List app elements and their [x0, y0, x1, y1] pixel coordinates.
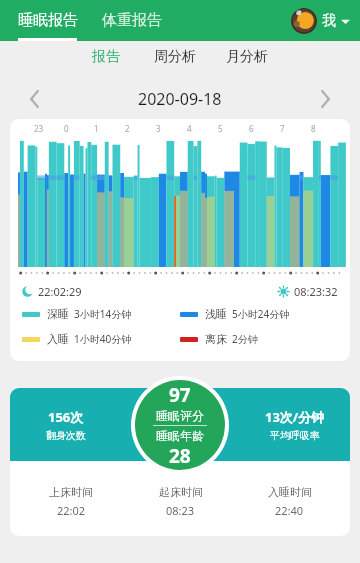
- staticText: 离床: [205, 332, 227, 346]
- staticText: 7: [280, 123, 285, 134]
- button[interactable]: 月分析: [222, 44, 272, 70]
- staticText: 5小时24分钟: [232, 307, 290, 321]
- staticText: 4: [187, 123, 192, 134]
- staticText: 0: [64, 123, 69, 134]
- button[interactable]: 周分析: [150, 44, 200, 70]
- staticText: 2分钟: [232, 332, 258, 346]
- staticText: 97: [169, 382, 191, 408]
- button[interactable]: 报告: [88, 44, 124, 70]
- button[interactable]: Previous day: [22, 86, 48, 112]
- staticText: 22:02:29: [38, 284, 82, 299]
- staticText: 1: [94, 123, 99, 134]
- staticText: 3小时14分钟: [74, 307, 132, 321]
- staticText: 月分析: [226, 48, 268, 66]
- staticText: 睡眠年龄: [156, 428, 204, 443]
- staticText: 入睡时间: [268, 485, 312, 499]
- staticText: 周分析: [154, 48, 196, 66]
- staticText: 08:23: [166, 503, 195, 518]
- staticText: 23: [34, 123, 44, 134]
- staticText: 翻身次数: [46, 429, 86, 442]
- staticText: 1小时40分钟: [74, 332, 132, 346]
- staticText: 5: [218, 123, 223, 134]
- staticText: 13次/分钟: [265, 408, 325, 426]
- staticText: 156次: [48, 408, 84, 426]
- staticText: 3: [156, 123, 161, 134]
- staticText: 起床时间: [159, 485, 203, 499]
- button[interactable]: 体重报告: [98, 11, 166, 30]
- staticText: 报告: [92, 48, 120, 66]
- staticText: 6: [249, 123, 254, 134]
- staticText: 08:23:32: [294, 284, 338, 299]
- staticText: 深睡: [47, 307, 69, 321]
- staticText: 浅睡: [205, 307, 227, 321]
- staticText: 上床时间: [49, 485, 93, 499]
- staticText: 我: [322, 12, 336, 30]
- staticText: 28: [169, 443, 191, 469]
- staticText: 睡眠报告: [18, 11, 78, 30]
- staticText: 入睡: [47, 332, 69, 346]
- staticText: 体重报告: [102, 11, 162, 30]
- button[interactable]: Next day: [312, 86, 338, 112]
- staticText: 平均呼吸率: [270, 429, 320, 442]
- staticText: 2020-09-18: [138, 88, 222, 110]
- staticText: 22:02: [57, 503, 86, 518]
- button[interactable]: 我: [291, 8, 360, 34]
- staticText: 22:40: [275, 503, 304, 518]
- staticText: 8: [311, 123, 316, 134]
- staticText: 2: [125, 123, 130, 134]
- button[interactable]: 睡眠报告: [14, 11, 82, 30]
- staticText: 睡眠评分: [156, 408, 204, 423]
